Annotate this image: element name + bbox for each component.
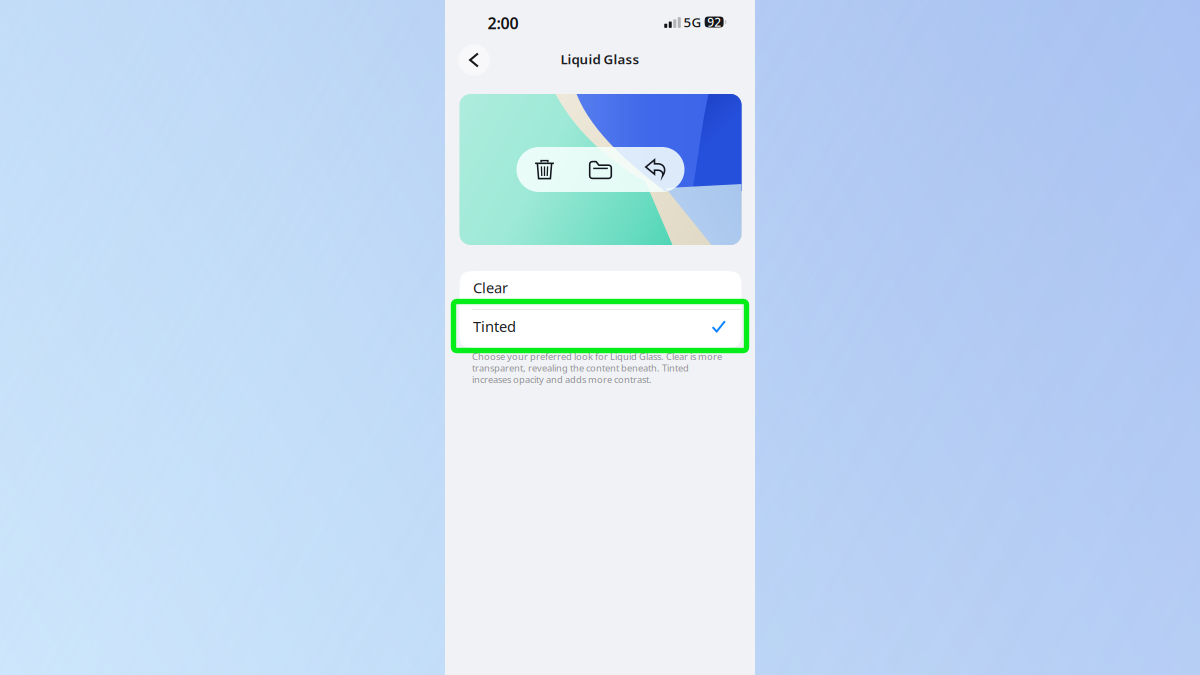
staticText: 92 [707,14,721,30]
staticText: Choose your preferred look for Liquid Gl… [472,350,722,363]
button[interactable]: Tinted [459,310,741,348]
staticText: 5G [683,13,701,31]
staticText: transparent, revealing the content benea… [472,362,689,374]
staticText: 2:00 [487,12,518,34]
staticText: increases opacity and adds more contrast… [472,373,652,386]
button[interactable]: Back [458,44,490,76]
staticText: Tinted [473,317,516,336]
staticText: Liquid Glass [560,50,639,68]
button[interactable]: Clear [459,271,741,309]
staticText: Clear [473,278,508,297]
